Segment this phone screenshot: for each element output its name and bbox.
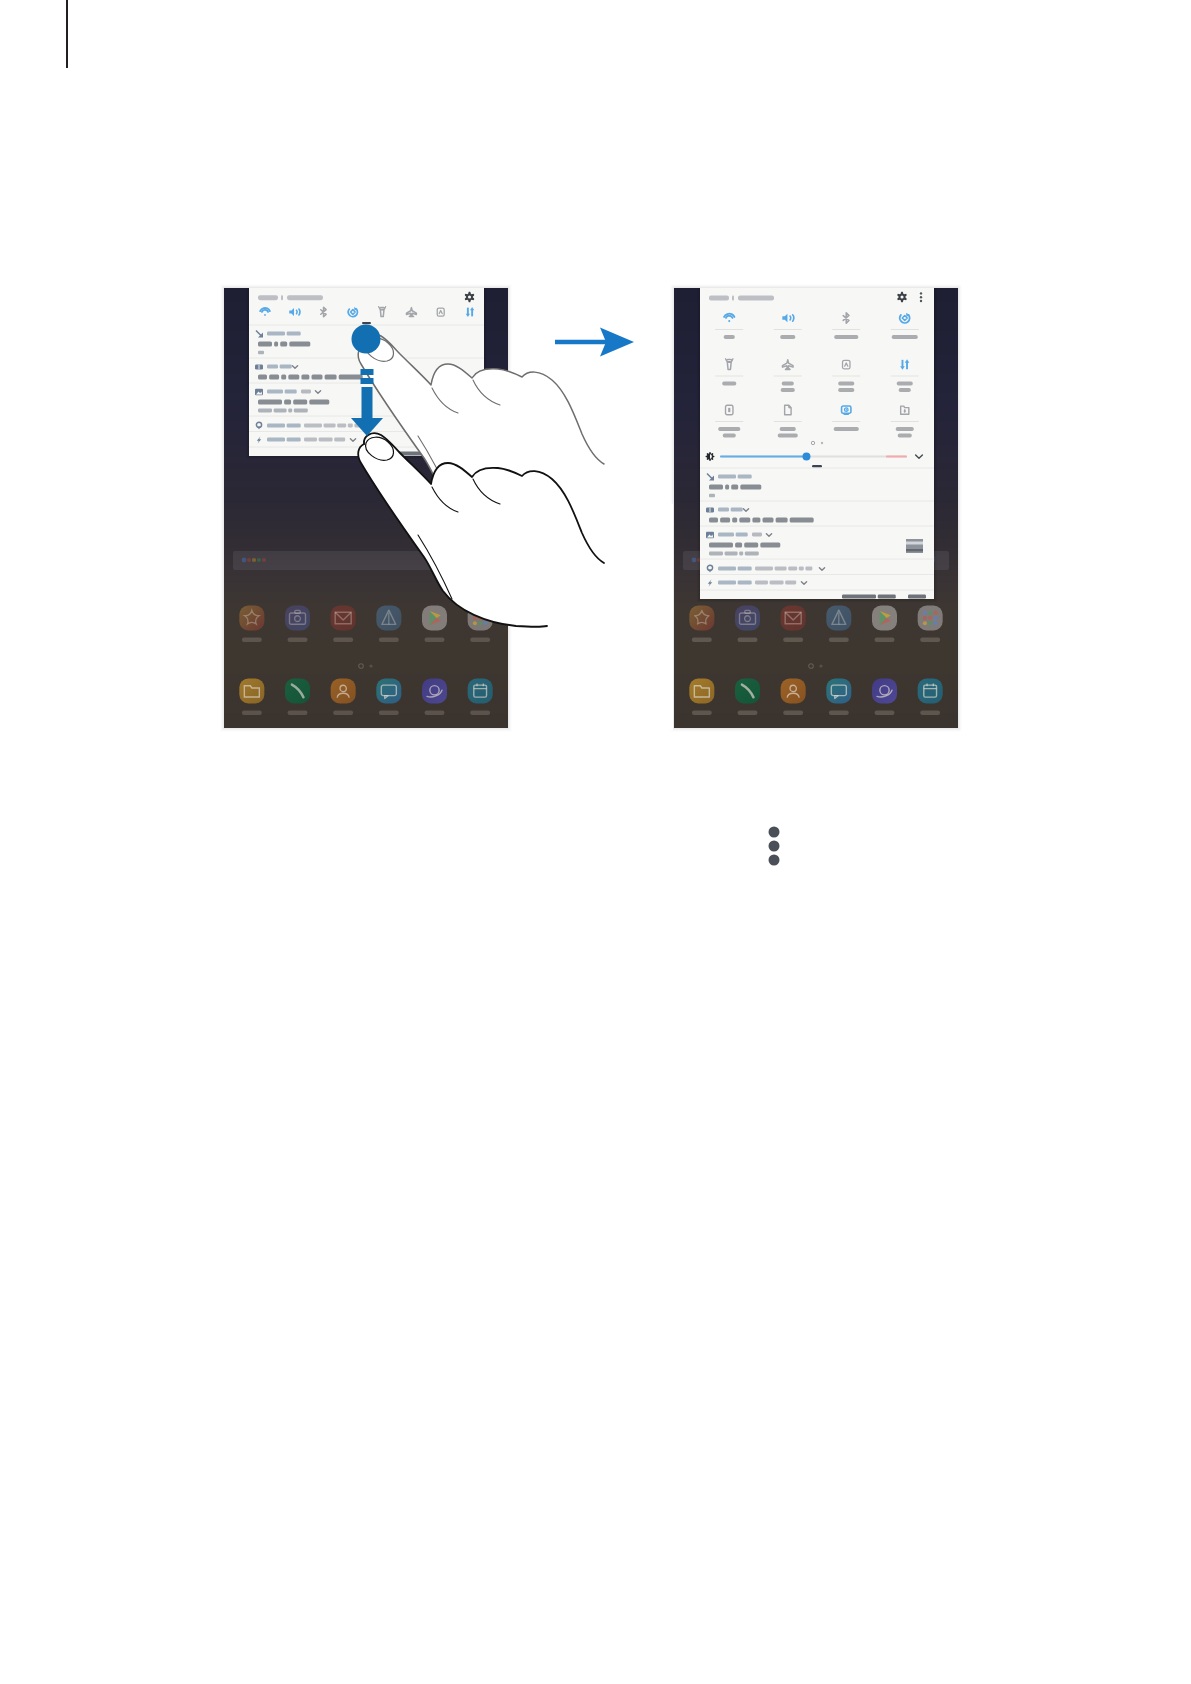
- button[interactable]: Bluetooth: [311, 300, 337, 324]
- button[interactable]: Bluetooth: [817, 302, 876, 346]
- button[interactable]: Sound: [281, 300, 307, 324]
- button[interactable]: Mobile hotspot: [759, 394, 818, 438]
- button[interactable]: Mobile data: [876, 349, 935, 393]
- button[interactable]: Torch: [369, 300, 395, 324]
- button[interactable]: Flight mode: [398, 300, 424, 324]
- button[interactable]: More options: [914, 290, 932, 310]
- button[interactable]: Mobile data: [457, 300, 483, 324]
- button[interactable]: Wi-Fi: [700, 302, 759, 346]
- button[interactable]: Wi-Fi: [252, 300, 278, 324]
- button[interactable]: More options: [762, 822, 786, 868]
- button[interactable]: Power saving: [817, 349, 876, 393]
- button[interactable]: Quick settings: [460, 290, 480, 310]
- button[interactable]: [674, 288, 958, 728]
- button[interactable]: Brightness: [700, 446, 934, 468]
- button[interactable]: Quick settings: [892, 290, 912, 310]
- button[interactable]: Flight mode: [759, 349, 818, 393]
- button[interactable]: Power saving: [428, 300, 454, 324]
- button[interactable]: [224, 288, 508, 728]
- button[interactable]: Secure Folder: [876, 394, 935, 438]
- button[interactable]: Sound: [759, 302, 818, 346]
- button[interactable]: Daily Board: [817, 394, 876, 438]
- button[interactable]: Auto rotate: [340, 300, 366, 324]
- button[interactable]: Torch: [700, 349, 759, 393]
- button[interactable]: Blue light filter: [700, 394, 759, 438]
- button[interactable]: Auto rotate: [876, 302, 935, 346]
